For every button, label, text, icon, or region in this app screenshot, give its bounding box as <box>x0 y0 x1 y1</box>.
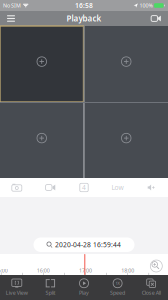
staticText: Playback <box>66 13 101 24</box>
staticText: 16:00 <box>37 267 50 274</box>
staticText: Speed <box>110 289 125 296</box>
button[interactable]: Split <box>34 275 67 300</box>
staticText: 18:00 <box>121 267 134 274</box>
button[interactable]: Play <box>67 275 101 300</box>
button[interactable]: 1X <box>101 275 134 300</box>
button[interactable]: Zoom in <box>147 257 165 275</box>
button[interactable]: 2020-04-28 16:59:44 <box>33 237 134 252</box>
staticText: Play <box>79 289 89 296</box>
button[interactable]: Channel 3 <box>0 103 83 178</box>
staticText: Live View <box>6 289 28 296</box>
button[interactable]: Add camera <box>146 11 166 26</box>
staticText: Low <box>112 183 124 192</box>
button[interactable]: Record <box>34 178 67 197</box>
staticText: 2020-04-28 16:59:44 <box>55 240 121 249</box>
button[interactable]: Low <box>101 178 134 197</box>
button[interactable]: Channel 4 <box>84 103 168 178</box>
button[interactable]: Live View <box>0 275 34 300</box>
staticText: Split <box>45 289 55 296</box>
staticText: 16:58 <box>75 1 93 10</box>
button[interactable]: Menu <box>1 11 21 26</box>
staticText: 1X <box>116 281 120 286</box>
button[interactable]: Channel 1 <box>0 26 83 102</box>
staticText: Close All <box>142 289 161 296</box>
staticText: No SIM <box>3 2 21 9</box>
staticText: 4 <box>82 183 86 192</box>
button[interactable]: Window layout <box>67 178 101 197</box>
button[interactable]: Close All <box>134 275 168 300</box>
staticText: 15:00 <box>0 267 8 274</box>
button[interactable]: Mute <box>134 178 168 197</box>
button[interactable]: Snapshot <box>0 178 34 197</box>
button[interactable]: Channel 2 <box>84 26 168 102</box>
staticText: 100% <box>139 2 152 9</box>
staticText: 17:00 <box>79 267 92 274</box>
